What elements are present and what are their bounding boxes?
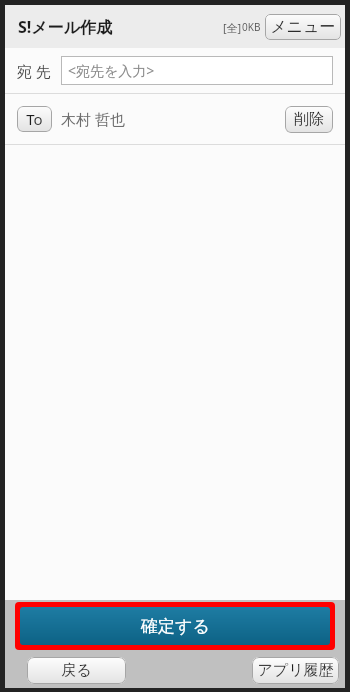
button[interactable]: アプリ履歴 <box>252 657 339 684</box>
button[interactable]: 削除 <box>285 106 333 133</box>
staticText: 宛 先 <box>17 61 51 81</box>
staticText: 木村 哲也 <box>61 109 285 129</box>
button[interactable]: 戻る <box>27 657 126 684</box>
button[interactable]: 確定する <box>20 607 330 645</box>
button[interactable]: <宛先を入力> <box>61 56 333 85</box>
staticText: アプリ履歴 <box>257 661 334 680</box>
staticText: 削除 <box>294 110 324 129</box>
staticText: S!メール作成 <box>18 16 113 38</box>
staticText: [全] <box>223 20 242 35</box>
button[interactable]: To <box>17 106 52 132</box>
staticText: <宛先を入力> <box>68 61 155 80</box>
button[interactable]: メニュー <box>265 14 341 40</box>
staticText: 確定する <box>141 616 210 637</box>
staticText: To <box>26 109 43 129</box>
staticText: 戻る <box>61 661 92 680</box>
staticText: 0KB <box>242 20 261 34</box>
staticText: メニュー <box>270 17 336 37</box>
